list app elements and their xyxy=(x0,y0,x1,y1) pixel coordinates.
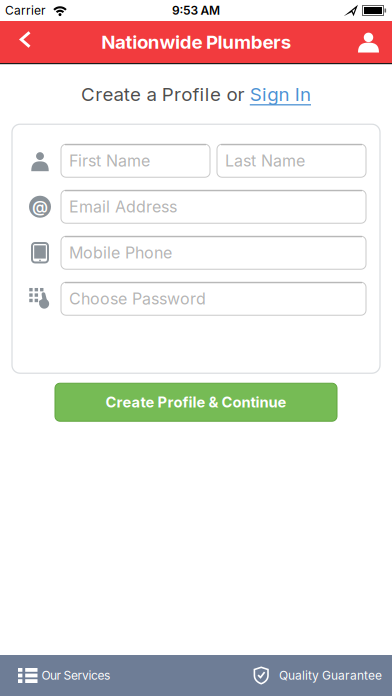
staticText: Quality Guarantee xyxy=(279,668,382,683)
button[interactable]: Mobile Phone xyxy=(61,236,366,269)
button[interactable]: Sign In xyxy=(250,83,311,105)
staticText: Email Address xyxy=(69,197,177,216)
button[interactable]: Create Profile & Continue xyxy=(55,383,337,421)
button[interactable]: Choose Password xyxy=(61,282,366,315)
staticText: Sign In xyxy=(250,83,311,105)
button[interactable]: Last Name xyxy=(217,144,366,177)
button[interactable]: Account xyxy=(346,21,392,63)
staticText: 9:53 AM xyxy=(172,3,220,18)
button[interactable]: Quality Guarantee xyxy=(253,655,392,696)
staticText: Carrier xyxy=(5,3,46,18)
staticText: Create Profile & Continue xyxy=(105,394,286,411)
staticText: Choose Password xyxy=(69,289,206,308)
staticText: First Name xyxy=(69,151,150,170)
staticText: Last Name xyxy=(225,151,305,170)
button[interactable]: Email Address xyxy=(61,190,366,223)
staticText: @ xyxy=(32,197,48,216)
button[interactable]: Our Services xyxy=(0,655,110,696)
button[interactable]: Back xyxy=(0,21,44,63)
staticText: Create a Profile or xyxy=(81,83,250,105)
button[interactable]: First Name xyxy=(61,144,210,177)
staticText: Nationwide Plumbers xyxy=(101,31,291,53)
staticText: Our Services xyxy=(41,668,110,683)
staticText: Mobile Phone xyxy=(69,243,172,262)
